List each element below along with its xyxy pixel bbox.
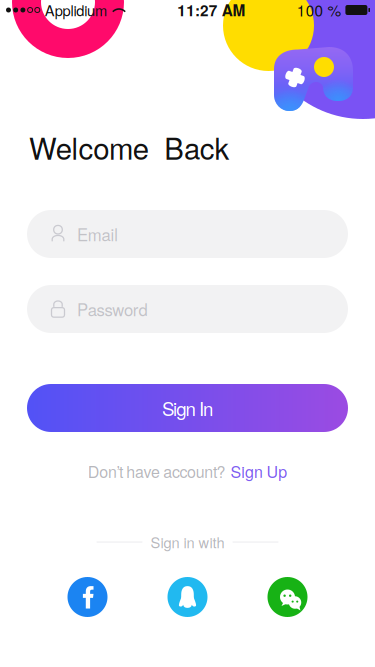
button[interactable]: Facebook [67, 577, 107, 617]
staticText: Applidium [45, 0, 107, 20]
staticText: Sign In [162, 395, 213, 421]
staticText: Don’t have account? [88, 459, 225, 482]
button[interactable]: Sign In [27, 384, 348, 432]
button[interactable]: Email [27, 210, 348, 258]
staticText: Email [77, 222, 118, 246]
staticText: Password [77, 297, 148, 321]
staticText: Sign Up [230, 459, 287, 482]
staticText: 11:27 AM [177, 0, 245, 21]
button[interactable]: WeChat [267, 577, 307, 617]
staticText: Sign in with [150, 531, 224, 552]
button[interactable]: Password [27, 285, 348, 333]
button[interactable]: Sign Up [230, 459, 287, 482]
staticText: 100 % [297, 0, 341, 21]
staticText: Welcome Back [29, 126, 230, 168]
button[interactable]: QQ [167, 577, 207, 617]
